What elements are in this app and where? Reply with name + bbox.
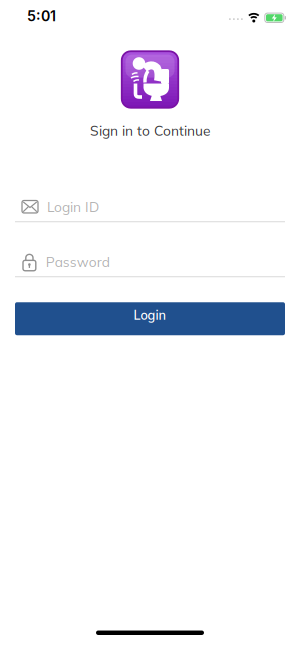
staticText: Sign in to Continue bbox=[90, 122, 210, 139]
button[interactable]: Login ID bbox=[15, 196, 285, 222]
staticText: Password bbox=[46, 253, 110, 270]
staticText: Login bbox=[133, 307, 166, 323]
button[interactable]: Login bbox=[15, 302, 285, 335]
staticText: 5:01 bbox=[27, 7, 56, 24]
button[interactable]: Password bbox=[15, 251, 285, 277]
staticText: Login ID bbox=[47, 198, 99, 215]
